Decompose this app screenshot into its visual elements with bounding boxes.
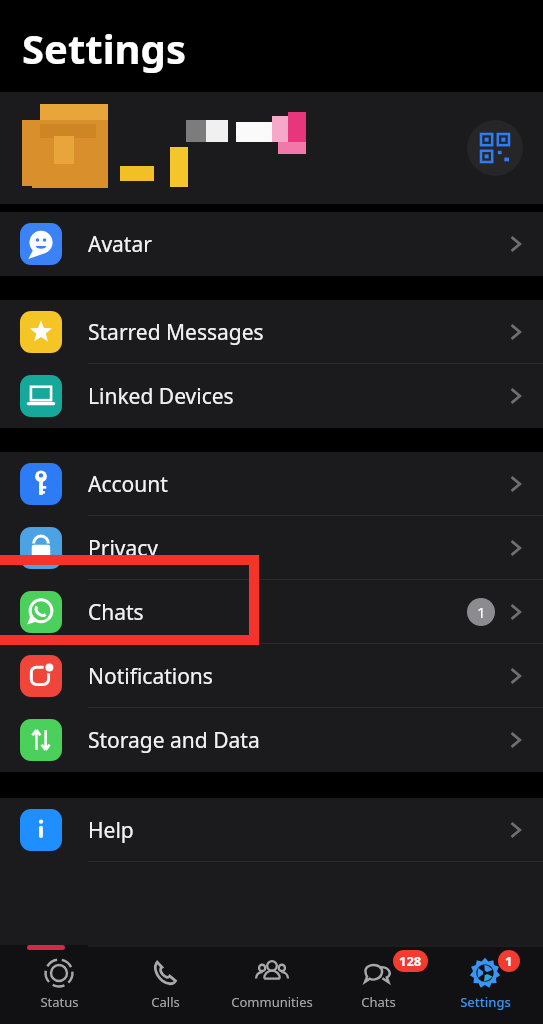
button[interactable]: Linked Devices xyxy=(0,364,543,428)
staticText: Settings xyxy=(22,21,186,75)
other: Status xyxy=(42,956,76,990)
button[interactable]: Settings xyxy=(437,954,533,1024)
other: Calls xyxy=(148,956,182,990)
staticText: Account xyxy=(88,470,168,499)
button[interactable]: Chats xyxy=(0,580,543,644)
button[interactable]: Communities xyxy=(224,954,320,1024)
button[interactable]: QR code xyxy=(467,120,523,176)
staticText: Chats xyxy=(361,993,396,1011)
staticText: Privacy xyxy=(88,534,159,563)
staticText: Communities xyxy=(231,993,313,1011)
staticText: Chats xyxy=(88,598,144,627)
button[interactable]: Account xyxy=(0,452,543,516)
staticText: Starred Messages xyxy=(88,318,264,347)
staticText: Calls xyxy=(151,993,180,1011)
staticText: 128 xyxy=(399,952,422,970)
button[interactable]: QR code xyxy=(0,92,543,204)
staticText: Avatar xyxy=(88,230,152,259)
staticText: 1 xyxy=(477,602,486,622)
other: Settings xyxy=(468,956,502,990)
staticText: Status xyxy=(40,993,79,1011)
staticText: Storage and Data xyxy=(88,726,260,755)
button[interactable]: Notifications xyxy=(0,644,543,708)
button[interactable]: Privacy xyxy=(0,516,543,580)
other: Chats xyxy=(361,956,395,990)
staticText: Help xyxy=(88,816,134,845)
staticText: Notifications xyxy=(88,662,213,691)
staticText: 1 xyxy=(505,952,513,970)
staticText: Linked Devices xyxy=(88,382,234,411)
button[interactable]: Starred Messages xyxy=(0,300,543,364)
button[interactable]: Calls xyxy=(117,954,213,1024)
button[interactable]: Status xyxy=(11,954,107,1024)
other: Communities xyxy=(255,956,289,990)
staticText: Settings xyxy=(460,993,511,1011)
button[interactable]: Storage and Data xyxy=(0,708,543,772)
button[interactable]: Chats xyxy=(330,954,426,1024)
button[interactable]: Help xyxy=(0,798,543,862)
button[interactable]: Avatar xyxy=(0,212,543,276)
